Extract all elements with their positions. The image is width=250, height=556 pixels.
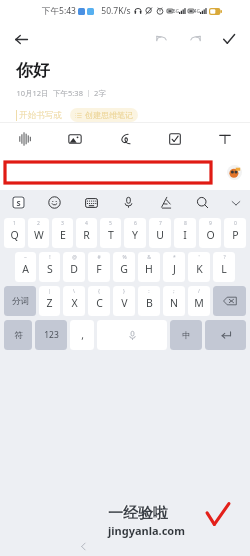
staticText: 分词 bbox=[12, 296, 29, 307]
button[interactable]: : bbox=[138, 286, 160, 316]
staticText: 中 bbox=[182, 330, 191, 341]
button[interactable]: ~ bbox=[15, 252, 36, 282]
button[interactable]: 8 bbox=[174, 218, 196, 248]
button[interactable]: Backspace bbox=[213, 286, 246, 316]
button[interactable]: @ bbox=[63, 252, 85, 282]
staticText: C bbox=[96, 296, 103, 310]
button[interactable]: Redo bbox=[182, 26, 208, 52]
staticText: 9 bbox=[209, 220, 212, 227]
staticText: 5 bbox=[109, 220, 112, 227]
button[interactable]: Image bbox=[50, 123, 100, 154]
staticText: X bbox=[71, 296, 78, 310]
staticText: ~ bbox=[24, 254, 27, 261]
staticText: / bbox=[198, 288, 200, 295]
staticText: Y bbox=[132, 228, 138, 242]
staticText: 1 bbox=[13, 220, 16, 227]
staticText: 2 bbox=[37, 220, 40, 227]
staticText: B bbox=[146, 296, 153, 310]
button[interactable]: 0 bbox=[224, 218, 246, 248]
staticText: T bbox=[108, 228, 114, 242]
staticText: 50.7K/s bbox=[101, 5, 131, 17]
staticText: J bbox=[173, 262, 176, 276]
staticText: # bbox=[97, 254, 101, 261]
button[interactable]: Undo bbox=[148, 26, 174, 52]
button[interactable]: Audio bbox=[0, 123, 50, 154]
staticText: G bbox=[120, 262, 128, 276]
staticText: 0 bbox=[234, 220, 237, 227]
button[interactable]: Space bbox=[97, 320, 167, 350]
staticText: 7 bbox=[159, 220, 162, 227]
staticText: jingyanla.com bbox=[108, 523, 185, 538]
button[interactable]: Back bbox=[8, 26, 34, 52]
button[interactable]: Sticker bbox=[226, 164, 242, 180]
staticText: * bbox=[173, 254, 176, 261]
button[interactable]: ? bbox=[213, 252, 235, 282]
staticText: 4 bbox=[85, 220, 88, 227]
staticText: W bbox=[34, 228, 44, 242]
button[interactable]: 符 bbox=[4, 320, 32, 350]
button[interactable]: 5 bbox=[100, 218, 121, 248]
staticText: % bbox=[122, 254, 127, 261]
staticText: ' bbox=[198, 254, 200, 261]
staticText: 创建思维笔记 bbox=[85, 110, 133, 120]
staticText: S bbox=[47, 262, 53, 276]
staticText: { bbox=[98, 288, 100, 295]
button[interactable]: } bbox=[113, 286, 135, 316]
button[interactable]: # bbox=[88, 252, 110, 282]
button[interactable]: 3 bbox=[52, 218, 73, 248]
button[interactable]: ! bbox=[39, 252, 60, 282]
staticText: 5G bbox=[173, 8, 179, 14]
button[interactable]: % bbox=[113, 252, 135, 282]
button[interactable]: & bbox=[138, 252, 160, 282]
staticText: U bbox=[156, 228, 164, 242]
button[interactable]: Back gesture bbox=[75, 538, 91, 554]
staticText: ! bbox=[49, 254, 51, 261]
button[interactable]: Done bbox=[216, 26, 242, 52]
button[interactable]: Emoji bbox=[36, 190, 73, 215]
staticText: 一经验啦 bbox=[107, 504, 167, 523]
staticText: & bbox=[147, 254, 151, 261]
button[interactable]: Collapse bbox=[221, 190, 250, 215]
staticText: : bbox=[148, 288, 150, 295]
staticText: 123 bbox=[44, 329, 59, 341]
button[interactable]: 6 bbox=[124, 218, 146, 248]
button[interactable]: * bbox=[163, 252, 185, 282]
button[interactable]: 中 bbox=[170, 320, 202, 350]
button[interactable] bbox=[5, 162, 211, 183]
staticText: L bbox=[221, 262, 227, 276]
button[interactable]: , bbox=[70, 320, 94, 350]
button[interactable]: \ bbox=[63, 286, 85, 316]
button[interactable]: 创建思维笔记 bbox=[70, 108, 138, 122]
button[interactable]: Enter bbox=[205, 320, 246, 350]
staticText: Q bbox=[10, 228, 19, 242]
button[interactable]: Checklist bbox=[150, 123, 200, 154]
staticText: O bbox=[206, 228, 215, 242]
staticText: D bbox=[70, 262, 78, 276]
staticText: 2字 bbox=[94, 88, 106, 98]
button[interactable]: 7 bbox=[149, 218, 171, 248]
button[interactable]: 4 bbox=[76, 218, 97, 248]
staticText: E bbox=[60, 228, 66, 242]
button[interactable]: Keyboard bbox=[73, 190, 110, 215]
button[interactable]: { bbox=[88, 286, 110, 316]
staticText: K bbox=[196, 262, 203, 276]
staticText: } bbox=[123, 288, 125, 295]
button[interactable]: Sogou bbox=[0, 190, 36, 215]
button[interactable]: 9 bbox=[199, 218, 221, 248]
button[interactable]: Search bbox=[184, 190, 221, 215]
button[interactable]: ; bbox=[163, 286, 185, 316]
staticText: R bbox=[83, 228, 90, 242]
button[interactable]: | bbox=[39, 286, 60, 316]
button[interactable]: Draw bbox=[100, 123, 150, 154]
button[interactable]: ' bbox=[188, 252, 210, 282]
staticText: A bbox=[22, 262, 29, 276]
button[interactable]: / bbox=[188, 286, 210, 316]
button[interactable]: Text style bbox=[200, 123, 250, 154]
button[interactable]: Voice bbox=[110, 190, 147, 215]
button[interactable]: 1 bbox=[4, 218, 25, 248]
button[interactable]: 分词 bbox=[4, 286, 36, 316]
staticText: | bbox=[48, 288, 51, 295]
button[interactable]: 2 bbox=[28, 218, 49, 248]
button[interactable]: 123 bbox=[35, 320, 67, 350]
button[interactable]: Handwriting bbox=[147, 190, 184, 215]
